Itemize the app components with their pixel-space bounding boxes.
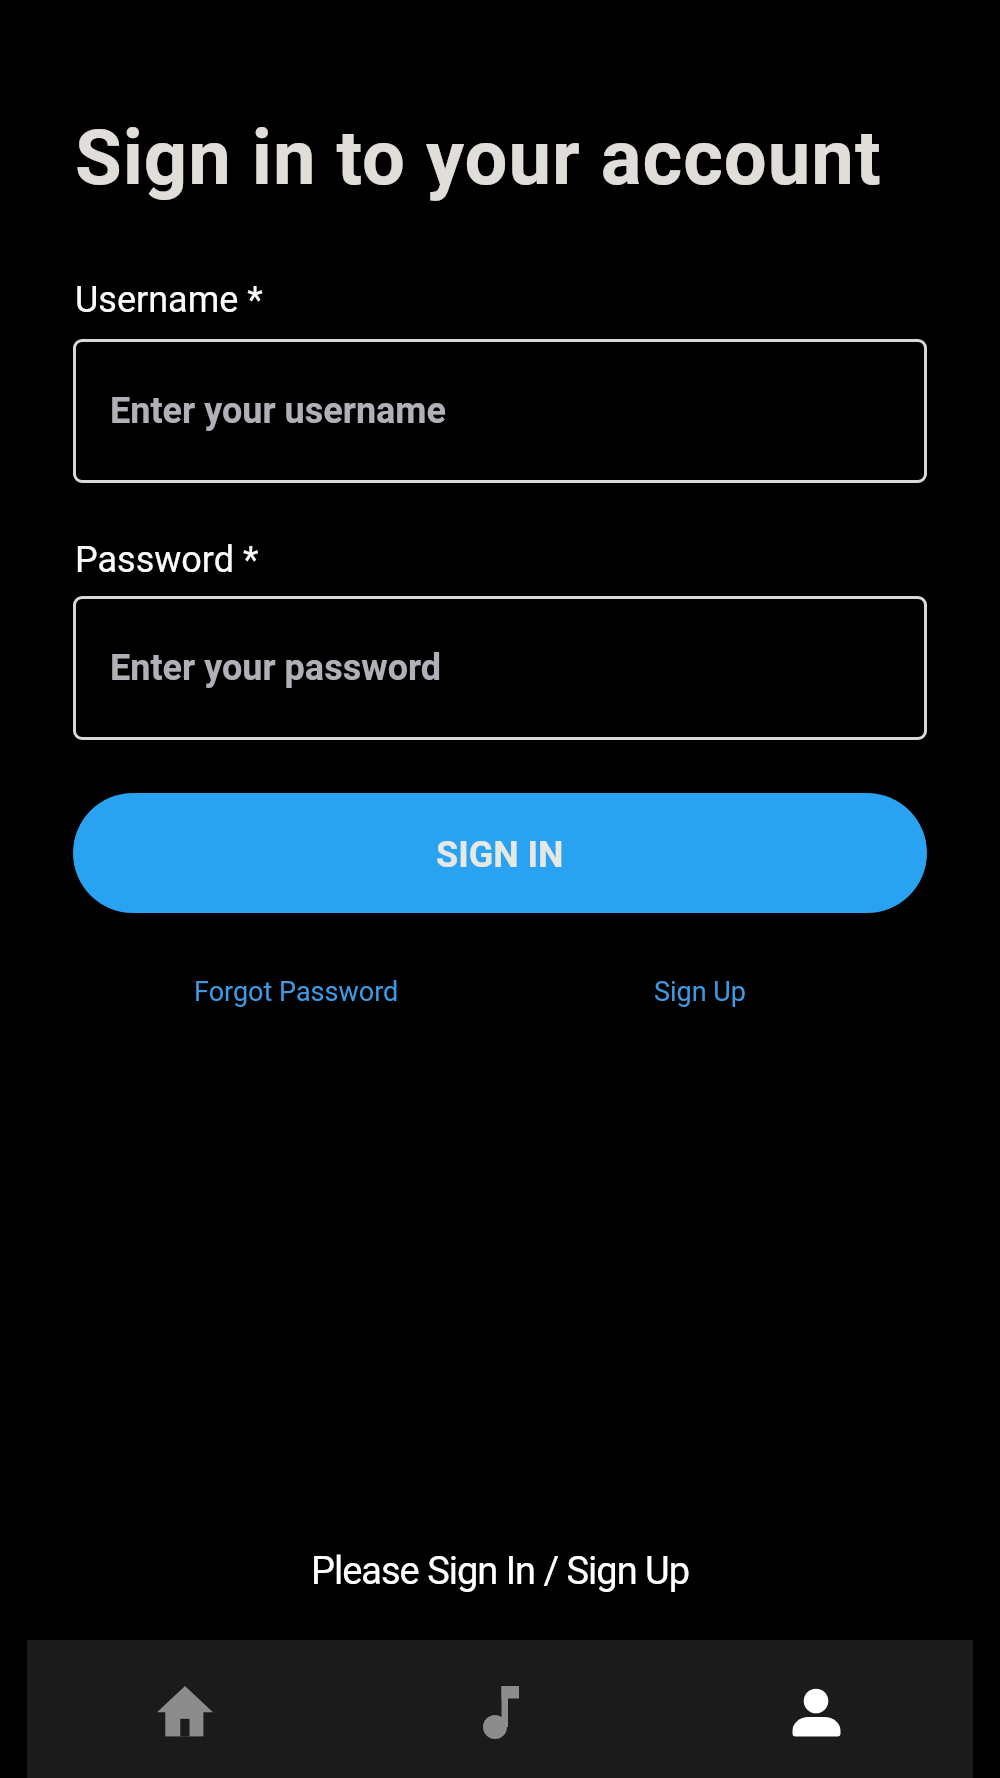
button[interactable]: [343, 1640, 658, 1778]
staticText: SIGN IN: [436, 834, 564, 876]
button[interactable]: SIGN IN: [73, 793, 927, 913]
staticText: Password *: [75, 539, 259, 581]
button[interactable]: Sign Up: [654, 976, 747, 1008]
button[interactable]: Forgot Password: [194, 976, 399, 1008]
staticText: Username *: [75, 279, 263, 321]
staticText: Please Sign In / Sign Up: [0, 1549, 1000, 1594]
button[interactable]: [658, 1640, 973, 1778]
button[interactable]: Enter your username: [73, 339, 927, 483]
staticText: Enter your username: [110, 390, 446, 432]
button[interactable]: [27, 1640, 343, 1778]
staticText: Sign in to your account: [75, 113, 882, 202]
staticText: Enter your password: [110, 647, 442, 689]
button[interactable]: Enter your password: [73, 596, 927, 740]
